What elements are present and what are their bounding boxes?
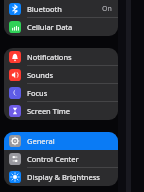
button[interactable]: Bluetooth bbox=[4, 0, 118, 18]
staticText: Screen Time bbox=[27, 106, 71, 116]
staticText: On bbox=[102, 4, 112, 14]
staticText: Bluetooth bbox=[27, 4, 62, 14]
button[interactable]: Control Center bbox=[4, 150, 118, 168]
button[interactable]: Display & Brightness bbox=[4, 168, 118, 186]
button[interactable]: Sounds bbox=[4, 66, 118, 84]
button[interactable]: Cellular Data bbox=[4, 18, 118, 36]
staticText: General bbox=[27, 136, 55, 146]
button[interactable]: Screen Time bbox=[4, 102, 118, 120]
button[interactable]: Focus bbox=[4, 84, 118, 102]
staticText: Focus bbox=[27, 88, 48, 98]
staticText: Display & Brightness bbox=[27, 172, 100, 182]
staticText: Control Center bbox=[27, 154, 79, 164]
button[interactable]: General bbox=[4, 132, 118, 150]
button[interactable]: Notifications bbox=[4, 48, 118, 66]
staticText: Notifications bbox=[27, 52, 72, 62]
staticText: Cellular Data bbox=[27, 22, 73, 32]
staticText: Sounds bbox=[27, 70, 54, 80]
